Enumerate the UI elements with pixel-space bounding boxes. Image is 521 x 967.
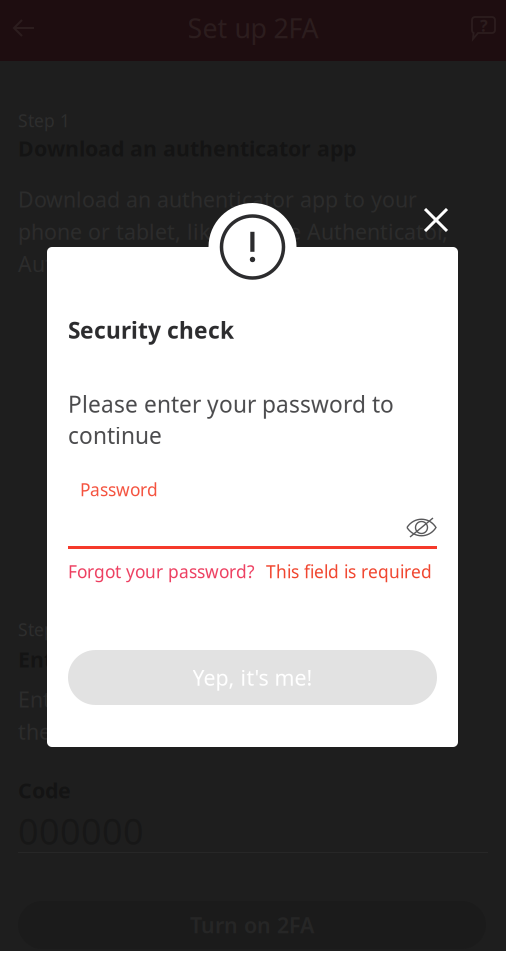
staticText: Download an authenticator app to your ph… bbox=[18, 185, 448, 278]
staticText: Step 1 bbox=[18, 109, 70, 132]
staticText: Enter the 6-digit code that's generated … bbox=[18, 685, 436, 746]
staticText: This field is required bbox=[266, 560, 432, 583]
staticText: Forgot your password? bbox=[68, 560, 255, 583]
button[interactable]: Show password bbox=[400, 510, 443, 545]
staticText: Security check bbox=[68, 315, 234, 345]
staticText: Step 2 bbox=[18, 618, 70, 641]
staticText: Please enter your password to continue bbox=[68, 389, 394, 450]
button[interactable]: Yep, it's me! bbox=[68, 650, 437, 705]
button[interactable]: Close bbox=[412, 196, 460, 244]
staticText: Turn on 2FA bbox=[190, 911, 314, 939]
staticText: Download an authenticator app bbox=[18, 134, 356, 162]
staticText: ? bbox=[480, 15, 488, 36]
staticText: Code bbox=[18, 776, 71, 804]
staticText: Yep, it's me! bbox=[192, 663, 312, 692]
staticText: Password bbox=[80, 478, 158, 501]
staticText: Enter the code bbox=[18, 645, 174, 673]
button[interactable]: Help bbox=[458, 0, 510, 56]
button[interactable]: Forgot your password? bbox=[68, 560, 255, 583]
staticText: Set up 2FA bbox=[187, 10, 318, 46]
